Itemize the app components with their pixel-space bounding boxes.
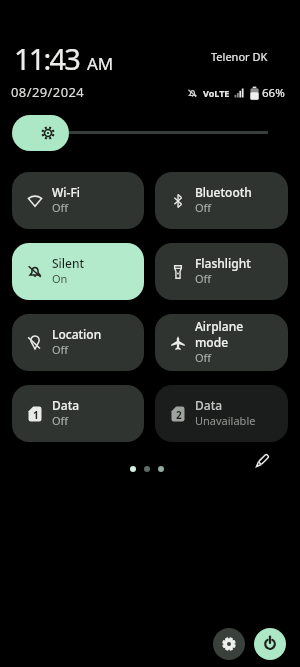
staticText: Telenor DK <box>211 49 268 64</box>
staticText: 1 <box>33 408 39 422</box>
staticText: Flashlight <box>195 255 251 271</box>
staticText: 11:43 <box>14 39 80 78</box>
staticText: 66% <box>262 85 285 101</box>
staticText: VoLTE <box>203 87 230 99</box>
staticText: Airplane <box>195 318 244 334</box>
staticText: Off <box>52 200 69 215</box>
staticText: 08/29/2024 <box>11 83 85 101</box>
button[interactable]: Silent <box>12 243 144 300</box>
staticText: Off <box>195 271 212 286</box>
button[interactable] <box>213 628 245 660</box>
button[interactable]: 1 <box>12 385 144 442</box>
button[interactable] <box>250 449 274 473</box>
staticText: Silent <box>52 255 85 271</box>
button[interactable]: Bluetooth <box>155 172 288 229</box>
button[interactable]: Location <box>12 314 144 371</box>
staticText: AM <box>87 52 114 75</box>
staticText: On <box>52 271 68 286</box>
staticText: Wi-Fi <box>52 184 80 200</box>
staticText: Off <box>195 350 212 365</box>
staticText: Data <box>52 397 80 413</box>
button[interactable]: Wi-Fi <box>12 172 144 229</box>
button[interactable]: 2 <box>155 385 288 442</box>
staticText: Off <box>52 413 69 428</box>
button[interactable] <box>254 628 286 660</box>
staticText: Bluetooth <box>195 184 252 200</box>
button[interactable] <box>12 115 69 151</box>
staticText: Off <box>195 200 212 215</box>
staticText: Data <box>195 397 223 413</box>
button[interactable]: Airplane <box>155 314 288 371</box>
staticText: 2 <box>176 408 182 422</box>
staticText: Unavailable <box>195 413 256 428</box>
staticText: mode <box>195 334 229 350</box>
button[interactable]: Flashlight <box>155 243 288 300</box>
staticText: Off <box>52 342 69 357</box>
staticText: Location <box>52 326 102 342</box>
